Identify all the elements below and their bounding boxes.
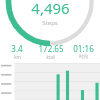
button[interactable]: 01:16 xyxy=(67,43,100,60)
staticText: kcal xyxy=(46,54,55,60)
staticText: 172.65 xyxy=(38,43,64,54)
staticText: km xyxy=(14,54,21,60)
staticText: 01:16 xyxy=(73,43,94,54)
staticText: Steps xyxy=(42,19,58,27)
staticText: 时间 xyxy=(79,54,88,60)
other: Step progress ring xyxy=(0,0,100,100)
button[interactable]: 172.65 xyxy=(34,43,67,60)
staticText: 4,496 xyxy=(31,0,70,18)
staticText: 3.4 xyxy=(11,43,23,54)
button[interactable]: 3.4 xyxy=(0,43,34,60)
button[interactable] xyxy=(0,61,100,100)
button[interactable]: 4,496 xyxy=(0,0,100,27)
